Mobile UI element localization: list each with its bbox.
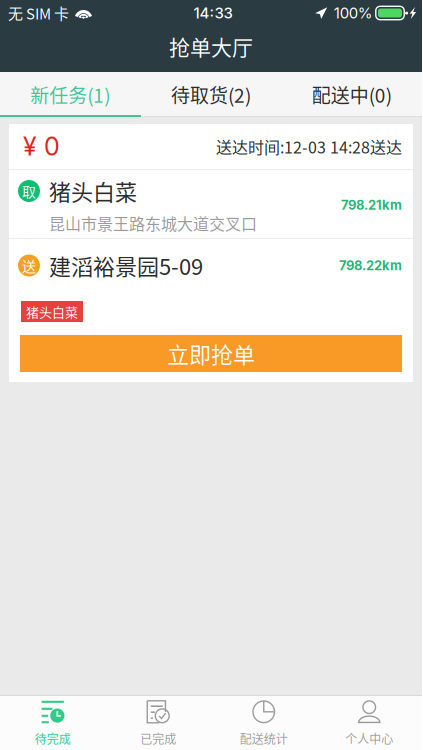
staticText: 待完成 — [35, 730, 71, 747]
staticText: 已完成 — [140, 730, 176, 747]
staticText: 猪头白菜 — [49, 175, 137, 207]
staticText: 配送中(0) — [312, 81, 392, 108]
staticText: 14:33 — [193, 4, 232, 22]
staticText: 抢单大厅 — [169, 31, 253, 61]
staticText: 798.21km — [341, 197, 402, 213]
staticText: 待取货(2) — [171, 81, 251, 108]
button[interactable]: 配送统计 — [211, 696, 316, 750]
staticText: 猪头白菜 — [26, 302, 78, 321]
staticText: 798.22km — [339, 258, 402, 273]
button[interactable]: 新任务(1) — [0, 72, 141, 117]
staticText: 昆山市景王路东城大道交叉口 — [49, 211, 257, 235]
staticText: 建滔裕景园5-09 — [49, 250, 203, 281]
staticText: 立即抢单 — [167, 338, 255, 369]
staticText: 取 — [22, 181, 36, 201]
staticText: 配送统计 — [240, 730, 288, 747]
staticText: 送 — [22, 255, 36, 276]
button[interactable]: 待取货(2) — [141, 72, 281, 117]
staticText: 个人中心 — [345, 730, 393, 747]
button[interactable]: 立即抢单 — [20, 335, 402, 372]
button[interactable]: 配送中(0) — [281, 72, 422, 117]
staticText: ¥ 0 — [23, 131, 60, 162]
button[interactable]: 个人中心 — [316, 696, 422, 750]
staticText: 无 SIM 卡 — [8, 2, 69, 24]
staticText: 新任务(1) — [30, 81, 110, 108]
button[interactable]: 已完成 — [105, 696, 211, 750]
button[interactable]: 待完成 — [0, 696, 105, 750]
staticText: 100% — [334, 4, 373, 22]
staticText: 送达时间:12-03 14:28送达 — [216, 135, 402, 158]
